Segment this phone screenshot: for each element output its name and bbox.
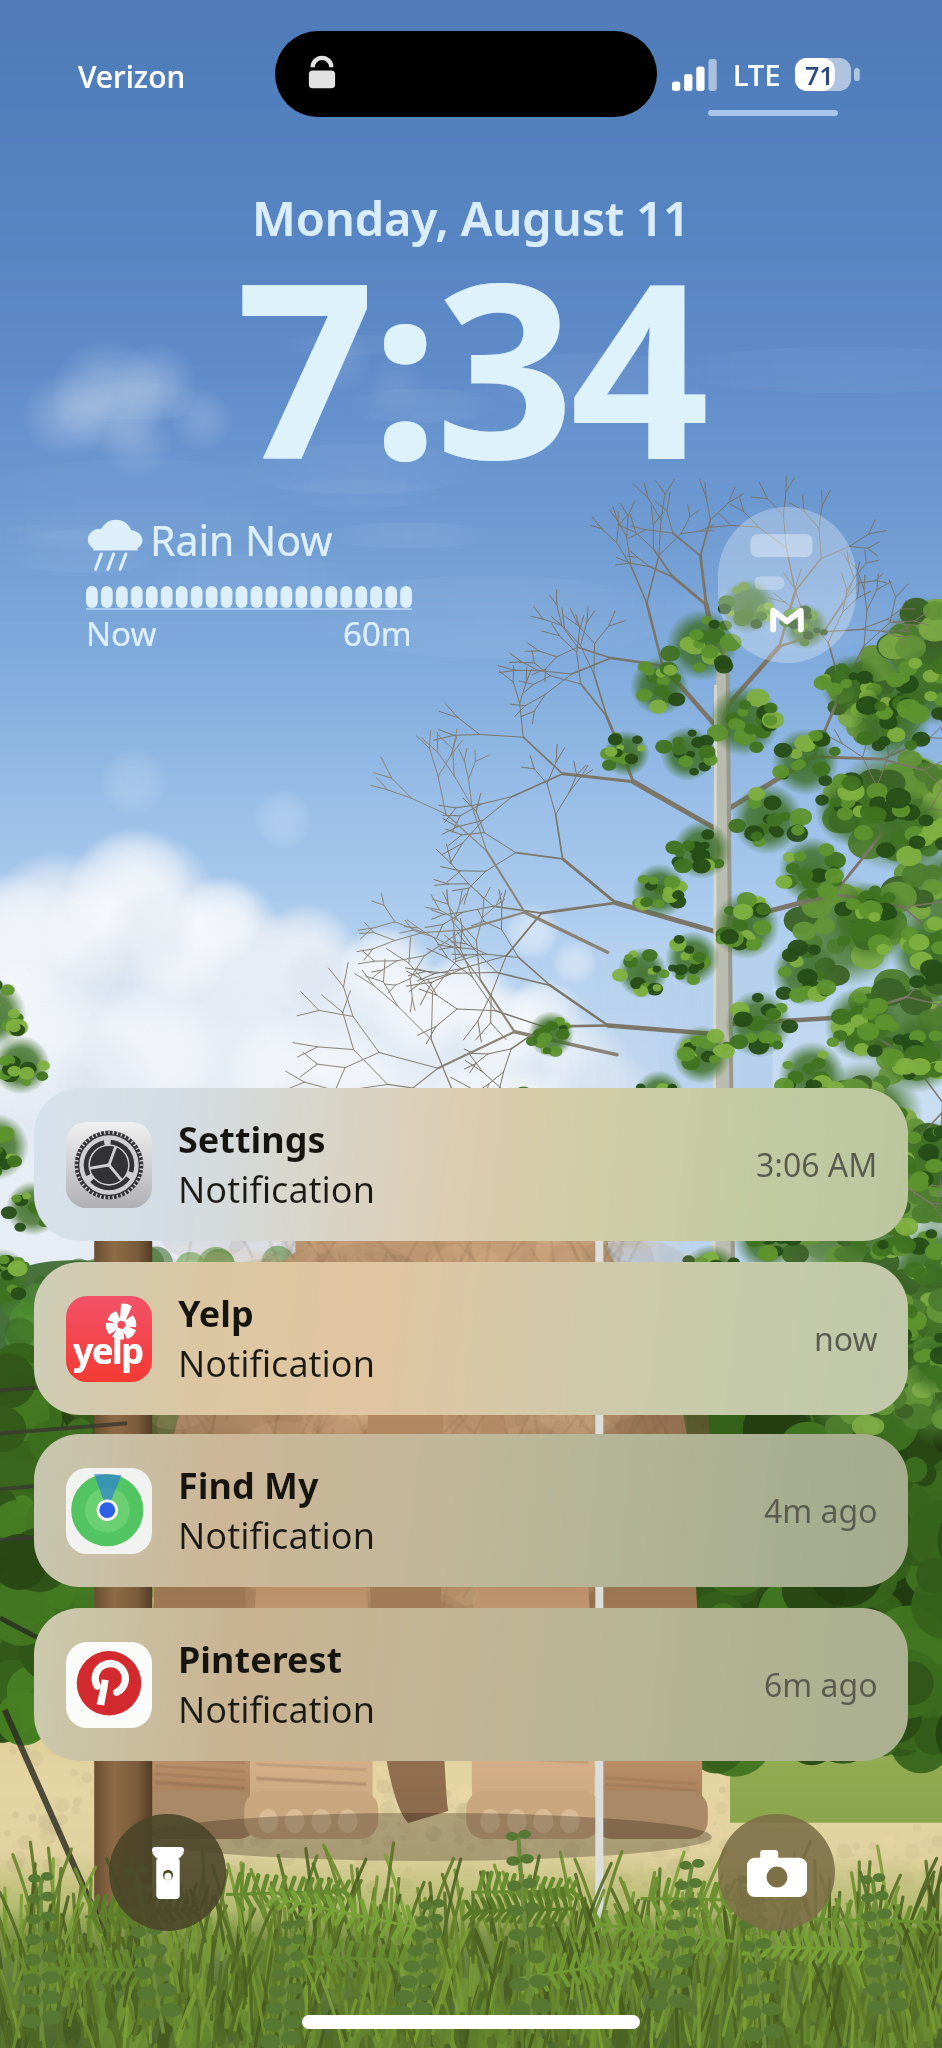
staticText: Yelp bbox=[178, 1289, 254, 1338]
staticText: Now bbox=[86, 611, 157, 656]
staticText: LTE bbox=[733, 55, 781, 94]
staticText: Find My bbox=[178, 1461, 319, 1510]
staticText: Notification bbox=[178, 1339, 375, 1388]
button[interactable]: Settings bbox=[34, 1088, 908, 1241]
staticText: Rain Now bbox=[150, 512, 333, 568]
button[interactable]: Pinterest bbox=[34, 1608, 908, 1761]
button[interactable]: Camera bbox=[718, 1814, 835, 1931]
staticText: 6m ago bbox=[764, 1663, 878, 1707]
staticText: Settings bbox=[178, 1115, 326, 1164]
button[interactable]: Flashlight bbox=[109, 1814, 226, 1931]
staticText: 4m ago bbox=[764, 1489, 878, 1533]
button[interactable]: Find My bbox=[34, 1434, 908, 1587]
staticText: Monday, August 11 bbox=[252, 186, 690, 250]
button[interactable]: Locked bbox=[275, 31, 657, 117]
staticText: Notification bbox=[178, 1511, 375, 1560]
staticText: 3:06 AM bbox=[756, 1143, 878, 1187]
staticText: Verizon bbox=[78, 56, 186, 97]
staticText: now bbox=[814, 1317, 878, 1361]
staticText: Notification bbox=[178, 1685, 375, 1734]
staticText: Pinterest bbox=[178, 1635, 343, 1684]
staticText: Notification bbox=[178, 1165, 375, 1214]
button[interactable]: Gmail widget bbox=[718, 507, 856, 663]
button[interactable]: yelp bbox=[34, 1262, 908, 1415]
staticText: 60m bbox=[343, 611, 412, 656]
staticText: 7:34 bbox=[236, 199, 706, 530]
staticText: yelp bbox=[73, 1326, 143, 1375]
staticText: 71 bbox=[805, 58, 834, 91]
